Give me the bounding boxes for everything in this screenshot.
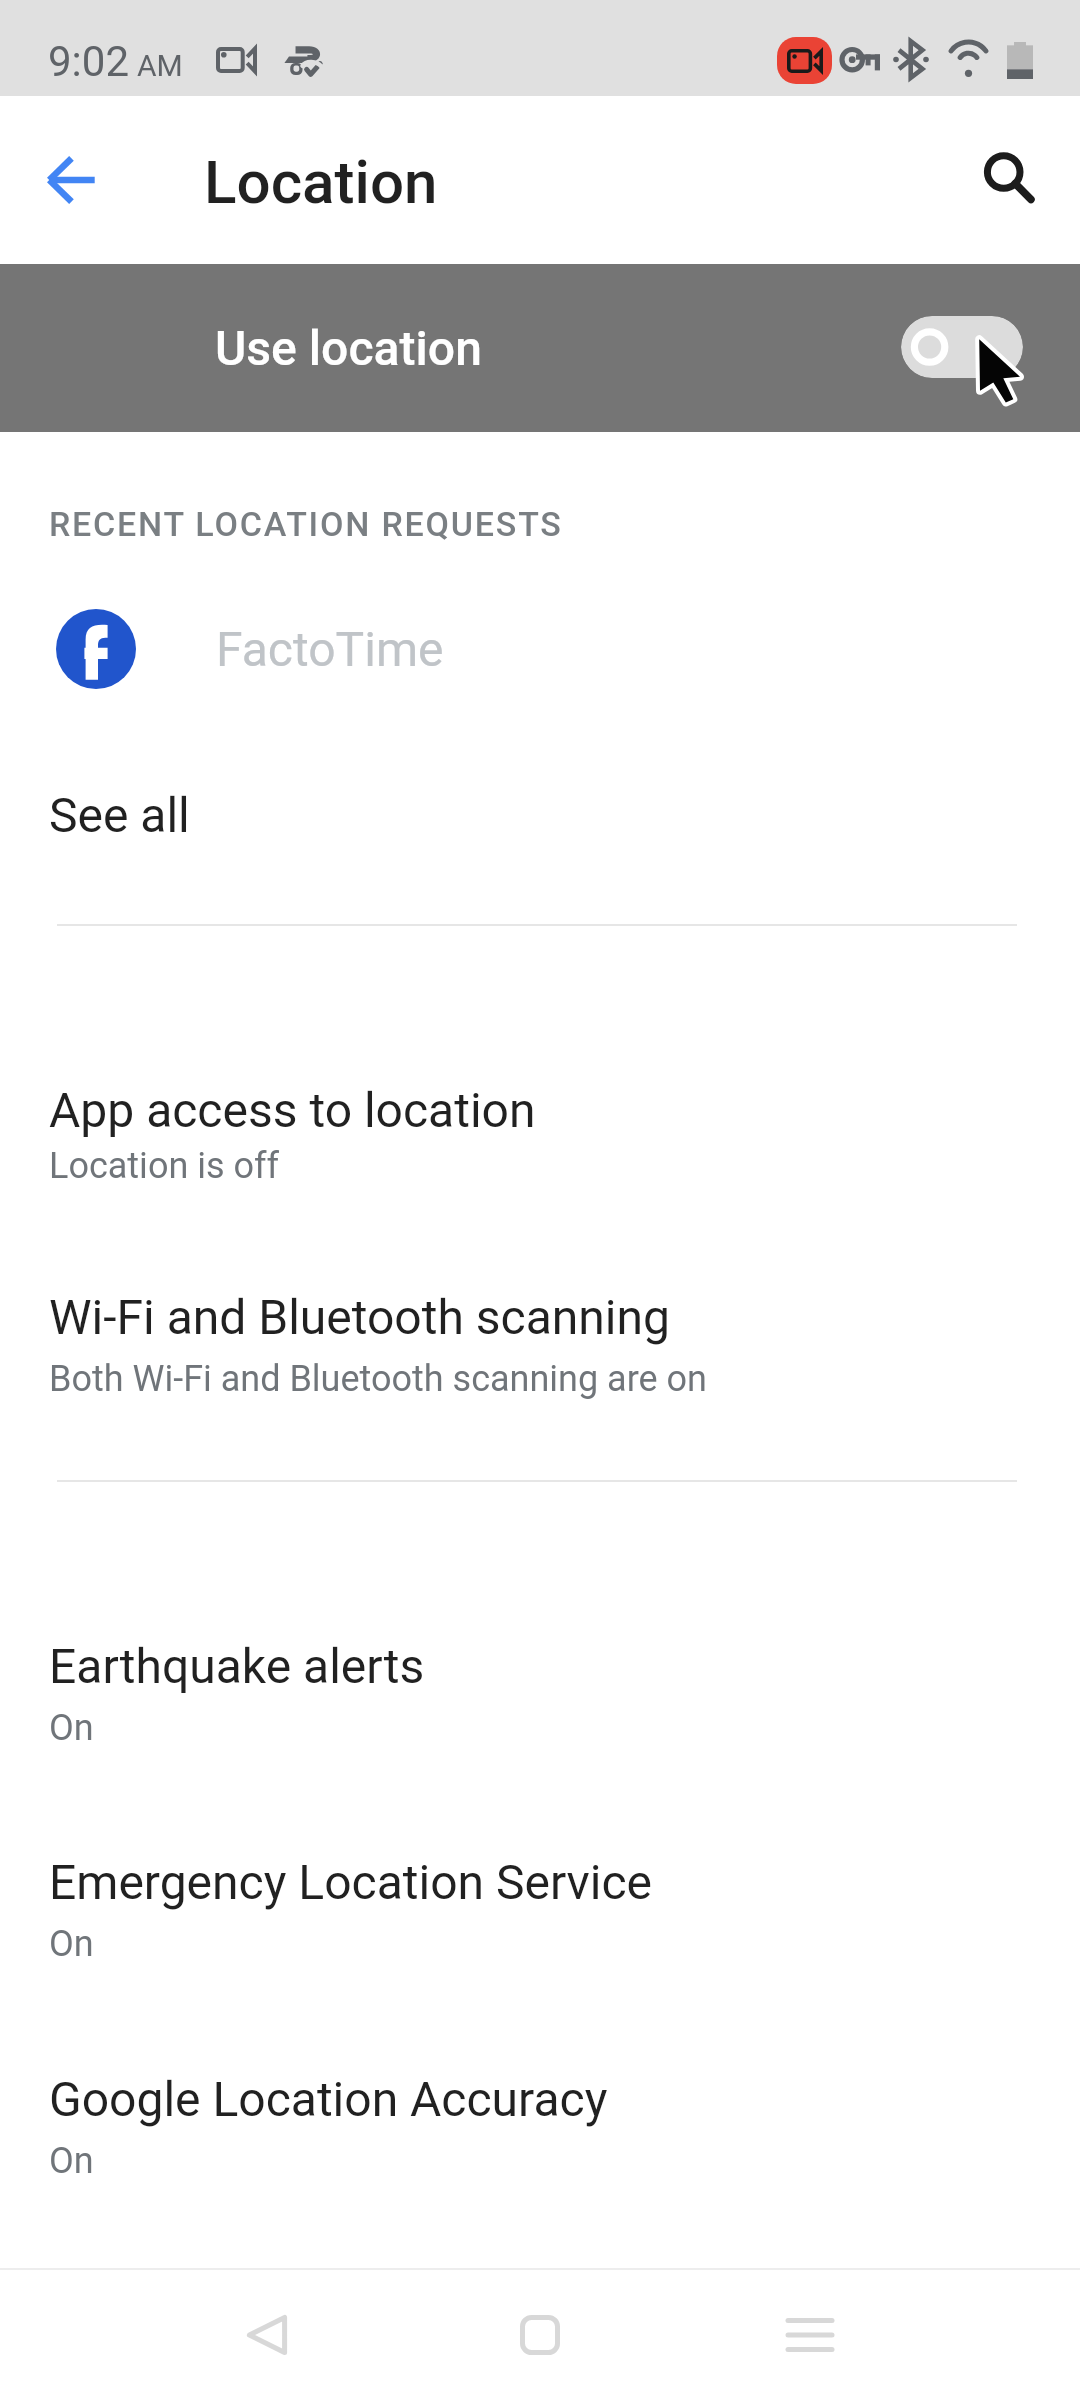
staticText: FactoTime (216, 621, 444, 677)
staticText: Both Wi-Fi and Bluetooth scanning are on (49, 1358, 707, 1400)
staticText: Location (204, 147, 438, 217)
button[interactable]: Search (957, 126, 1061, 230)
button[interactable]: Wi-Fi and Bluetooth scanning (0, 1289, 1080, 1410)
staticText: Location is off (49, 1145, 280, 1187)
staticText: On (49, 1923, 94, 1965)
staticText: RECENT LOCATION REQUESTS (49, 504, 563, 544)
button[interactable]: Navigate up (26, 134, 118, 226)
staticText: AM (137, 48, 183, 83)
staticText: On (49, 1707, 94, 1749)
staticText: Emergency Location Service (49, 1854, 653, 1910)
button[interactable]: See all (0, 760, 1080, 870)
staticText: App access to location (49, 1082, 536, 1138)
staticText: Wi-Fi and Bluetooth scanning (49, 1289, 670, 1345)
button[interactable]: App access to location (0, 1082, 1080, 1197)
staticText: Google Location Accuracy (49, 2071, 608, 2127)
staticText: Use location (215, 320, 482, 376)
button[interactable]: Google Location Accuracy (0, 2071, 1080, 2192)
button[interactable]: Use location (0, 264, 1080, 432)
button[interactable]: Emergency Location Service (0, 1854, 1080, 1975)
staticText: 9:02 (48, 37, 129, 86)
staticText: On (49, 2140, 94, 2182)
button[interactable]: Earthquake alerts (0, 1638, 1080, 1759)
button[interactable]: FactoTime (0, 594, 1080, 704)
button[interactable]: Recent apps (720, 2288, 900, 2382)
button[interactable]: Home (450, 2288, 630, 2382)
button[interactable]: Back (177, 2288, 357, 2382)
staticText: Earthquake alerts (49, 1638, 425, 1694)
button[interactable]: Use location toggle, off (901, 316, 1023, 378)
staticText: See all (49, 787, 190, 843)
